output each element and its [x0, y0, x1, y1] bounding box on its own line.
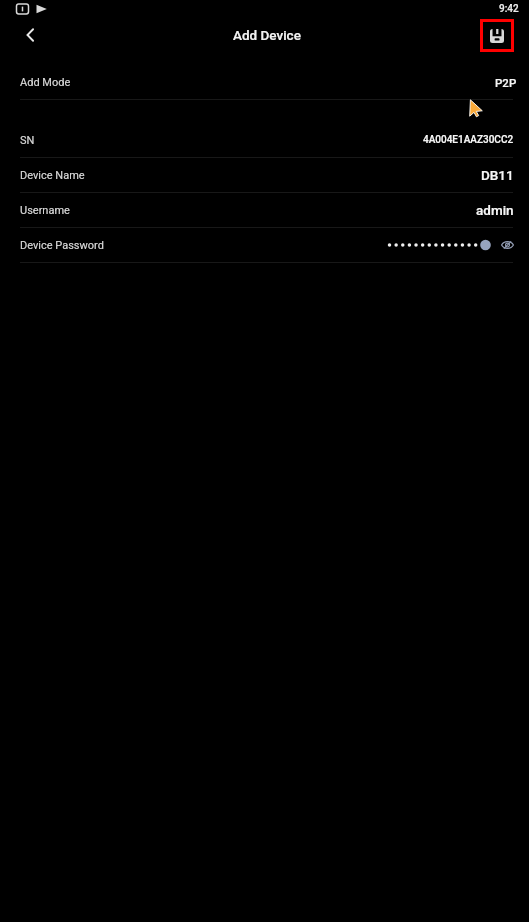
button[interactable]: Device Name — [0, 158, 529, 193]
staticText: 4A004E1AAZ30CC2 — [423, 134, 514, 146]
staticText: Username — [20, 204, 70, 217]
button[interactable]: Username — [0, 193, 529, 228]
staticText: Add Device — [233, 27, 301, 43]
button[interactable]: Show password — [497, 235, 517, 255]
staticText: Add Mode — [20, 76, 71, 89]
button[interactable]: Add Mode — [0, 65, 529, 100]
staticText: P2P — [495, 76, 517, 89]
staticText: Device Password — [20, 239, 104, 252]
button[interactable]: Back — [14, 18, 48, 52]
staticText: Device Name — [20, 169, 85, 182]
staticText: 9:42 — [499, 3, 519, 15]
button[interactable]: SN — [0, 123, 529, 158]
button[interactable]: Save — [480, 19, 514, 52]
staticText: admin — [476, 202, 514, 218]
staticText: SN — [20, 134, 35, 147]
button[interactable]: Device Password — [0, 228, 529, 263]
staticText: DB11 — [481, 167, 514, 183]
